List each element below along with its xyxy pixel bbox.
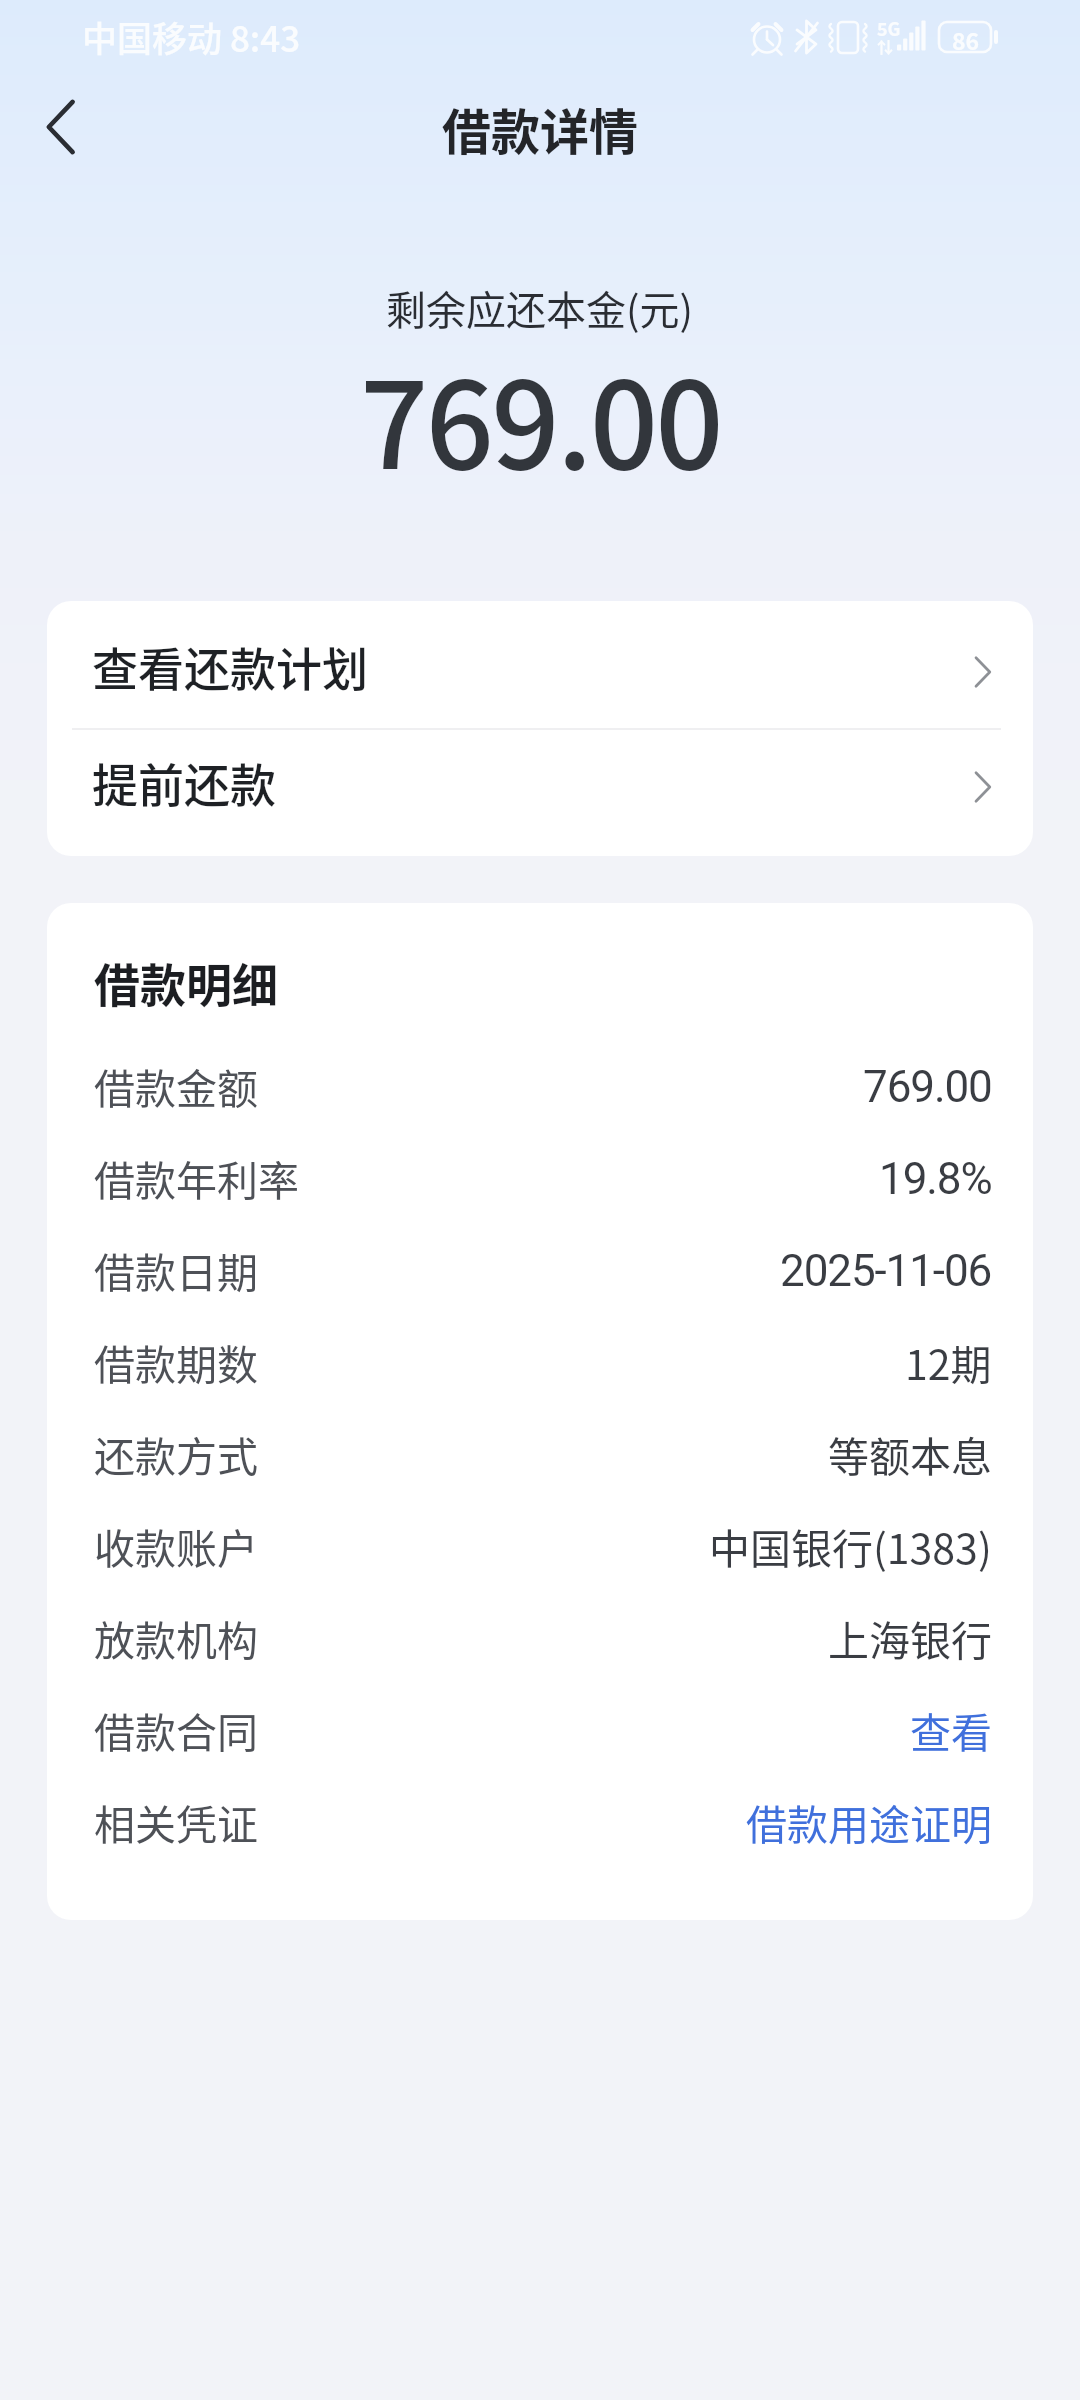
staticText: 查看还款计划 [92,633,976,700]
staticText: 查看 [910,1700,992,1759]
button[interactable]: 提前还款 [47,730,1033,856]
staticText: 2025-11-06 [780,1245,992,1297]
staticText: 5G [877,15,901,41]
staticText: 19.8% [879,1153,992,1205]
staticText: 放款机构 [94,1608,258,1667]
staticText: 12期 [905,1332,992,1391]
staticText: 还款方式 [94,1424,258,1483]
staticText: 借款日期 [94,1240,258,1299]
staticText: 借款明细 [94,949,278,1016]
button[interactable]: Back [22,89,98,165]
staticText: 769.00 [863,1061,992,1113]
staticText: 借款年利率 [94,1148,299,1207]
staticText: 借款用途证明 [746,1792,992,1851]
staticText: 借款详情 [442,93,639,164]
staticText: 剩余应还本金(元) [386,279,694,337]
staticText: 上海银行 [828,1608,992,1667]
staticText: 借款金额 [94,1056,258,1115]
staticText: 中国移动 8:43 [82,11,301,62]
staticText: 借款期数 [94,1332,258,1391]
staticText: 等额本息 [828,1424,992,1483]
staticText: 769.00 [360,330,721,504]
staticText: 中国银行(1383) [709,1516,992,1575]
staticText: 相关凭证 [94,1792,258,1851]
staticText: 收款账户 [94,1516,258,1575]
staticText: 86 [952,23,980,56]
staticText: 提前还款 [92,749,976,816]
staticText: ⇅ [877,34,894,57]
staticText: 借款合同 [94,1700,258,1759]
button[interactable]: 查看还款计划 [47,601,1033,728]
